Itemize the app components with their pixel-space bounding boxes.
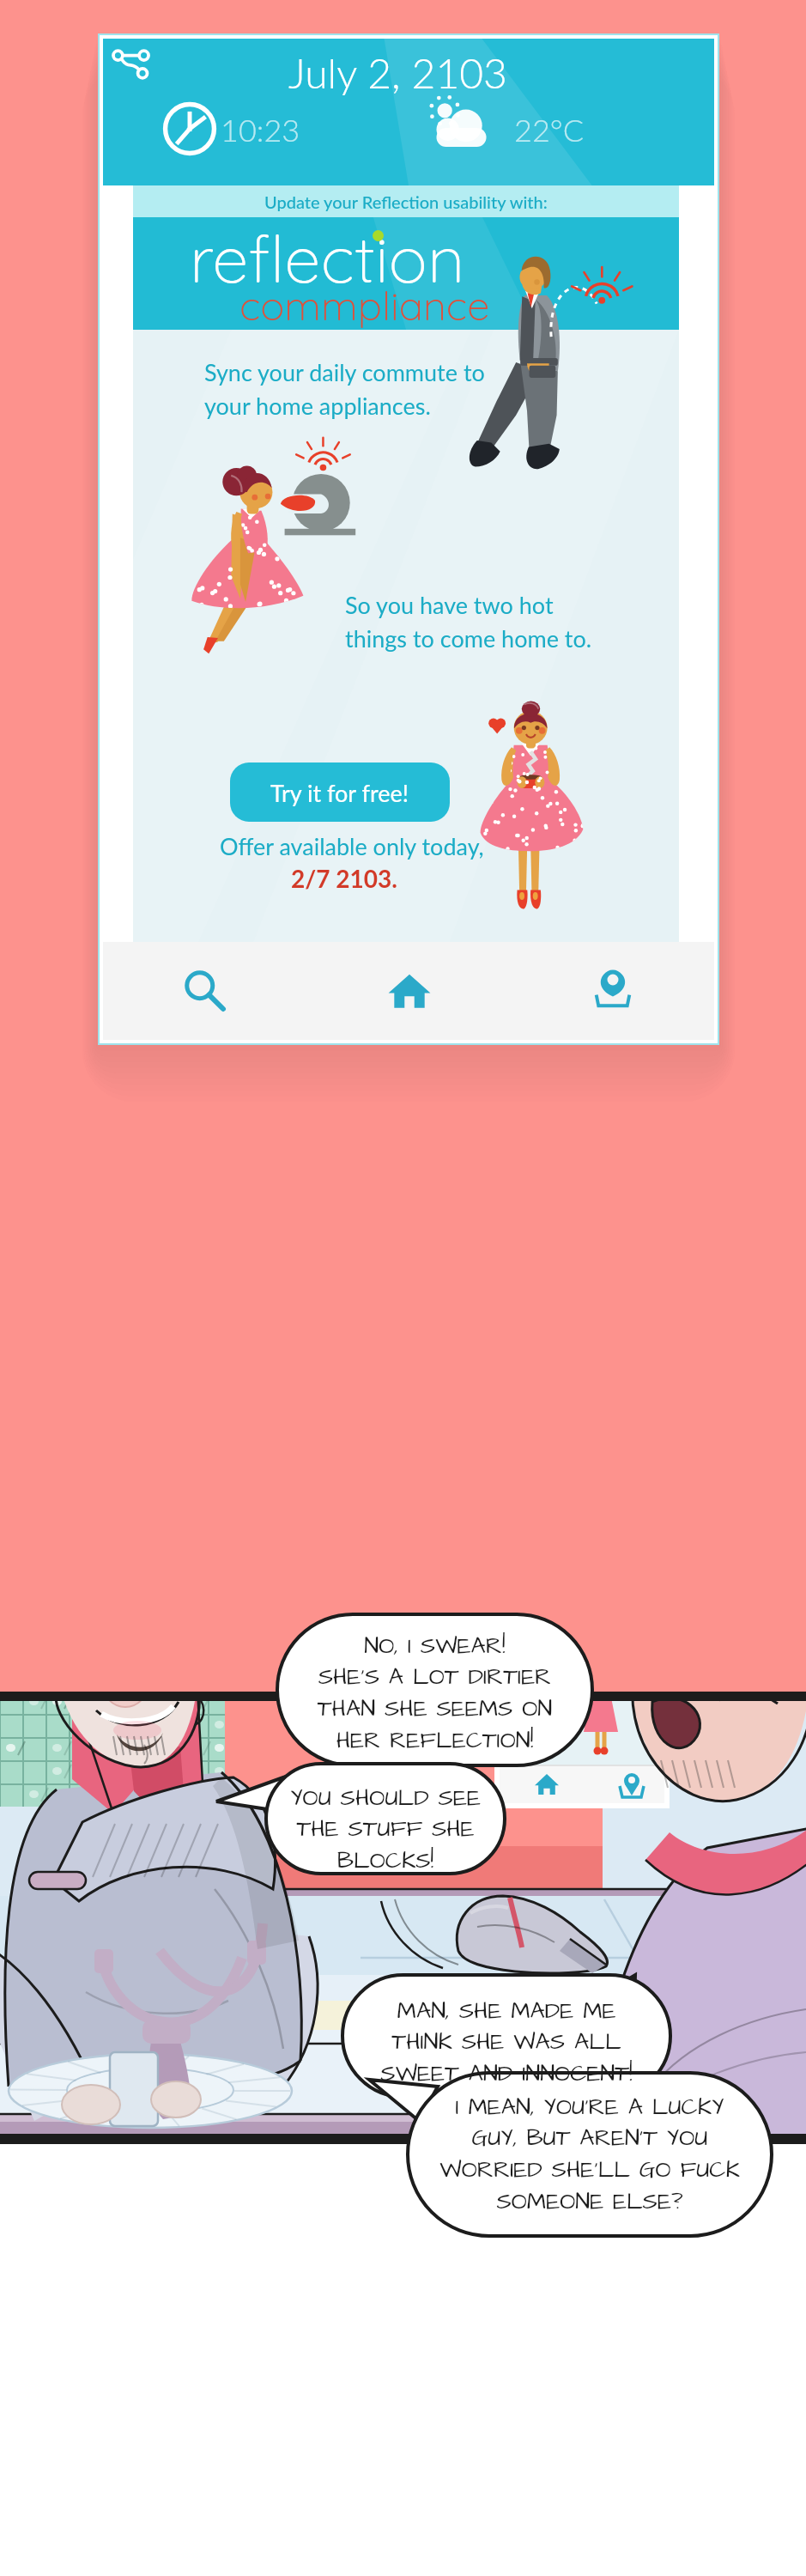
staticText: Offer available only today, — [220, 832, 484, 860]
staticText: 2/7 2103. — [291, 864, 397, 893]
staticText: Try it for free! — [270, 779, 409, 806]
staticText: NO, I SWEAR! SHE'S A LOT DIRTIER THAN SH… — [280, 1630, 590, 1757]
button[interactable]: Share — [108, 42, 153, 87]
staticText: Update your Reflection usability with: — [264, 191, 548, 212]
staticText: So you have two hot things to come home … — [345, 591, 592, 653]
staticText: July 2, 2103 — [288, 48, 507, 98]
staticText: commpliance — [239, 280, 490, 331]
button[interactable]: Home — [307, 942, 511, 1040]
staticText: 10:23 — [221, 111, 300, 148]
button[interactable]: Search — [103, 942, 307, 1040]
staticText: I MEAN, YOU'RE A LUCKY GUY, BUT AREN'T Y… — [410, 2091, 769, 2218]
staticText: MAN, SHE MADE ME THINK SHE WAS ALL SWEET… — [345, 1995, 668, 2090]
staticText: Sync your daily commute to your home app… — [204, 358, 485, 420]
button[interactable]: Places — [511, 942, 714, 1040]
staticText: 22°C — [514, 111, 584, 148]
button[interactable]: Try it for free! — [230, 762, 450, 822]
staticText: reflection — [190, 217, 465, 299]
staticText: YOU SHOULD SEE THE STUFF SHE BLOCKS! — [269, 1782, 502, 1877]
